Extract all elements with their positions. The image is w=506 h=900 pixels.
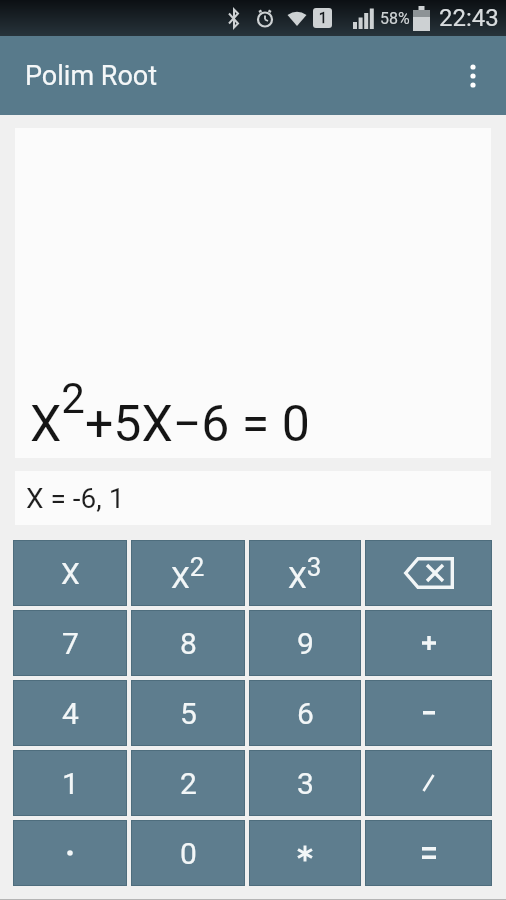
button[interactable]: 6 — [249, 680, 361, 746]
staticText: 8 — [180, 626, 197, 661]
staticText: 4 — [62, 696, 79, 731]
button[interactable] — [365, 820, 492, 886]
button[interactable]: 7 — [13, 610, 127, 676]
button[interactable]: X2 — [131, 540, 245, 606]
staticText: 58% — [380, 9, 410, 28]
button[interactable]: 1 — [13, 750, 127, 816]
staticText: 1 — [319, 10, 327, 26]
button[interactable] — [365, 610, 492, 676]
staticText: X2+5X−6 = 0 — [30, 374, 310, 453]
button[interactable] — [365, 680, 492, 746]
staticText: 2 — [180, 766, 197, 801]
staticText: 5 — [180, 696, 197, 731]
staticText: Polim Root — [25, 60, 158, 92]
button[interactable]: 4 — [13, 680, 127, 746]
button[interactable] — [365, 750, 492, 816]
button[interactable]: 3 — [249, 750, 361, 816]
button[interactable] — [459, 62, 487, 90]
staticText: 6 — [297, 696, 314, 731]
staticText: X2 — [171, 552, 205, 595]
button[interactable]: 8 — [131, 610, 245, 676]
staticText: 22:43 — [439, 4, 499, 32]
staticText: 3 — [297, 766, 314, 801]
staticText: 0 — [180, 836, 197, 871]
staticText: X = -6, 1 — [26, 482, 125, 515]
staticText: X3 — [288, 552, 322, 595]
button[interactable]: X3 — [249, 540, 361, 606]
button[interactable] — [13, 820, 127, 886]
staticText: 9 — [297, 626, 314, 661]
button[interactable]: 0 — [131, 820, 245, 886]
button[interactable] — [365, 540, 492, 606]
button[interactable] — [249, 820, 361, 886]
staticText: 1 — [62, 766, 79, 801]
staticText: X — [61, 556, 80, 591]
button[interactable]: 5 — [131, 680, 245, 746]
button[interactable]: X — [13, 540, 127, 606]
staticText: 7 — [62, 626, 79, 661]
button[interactable]: 2 — [131, 750, 245, 816]
button[interactable]: 9 — [249, 610, 361, 676]
